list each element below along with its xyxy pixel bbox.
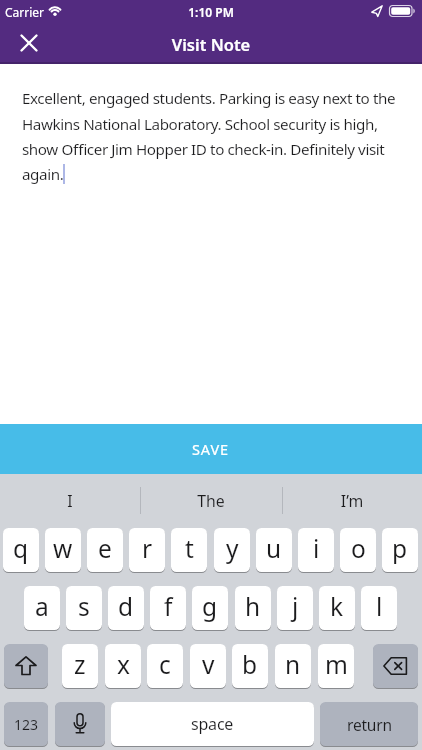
staticText: b [242,648,258,681]
button[interactable]: w [45,528,81,572]
staticText: Carrier [5,4,45,20]
button[interactable]: m [318,644,354,688]
staticText: p [392,532,408,565]
staticText: m [325,648,348,681]
staticText: j [292,590,299,623]
button[interactable]: b [232,644,268,688]
staticText: n [285,648,301,681]
button[interactable]: g [192,586,228,630]
staticText: y [226,532,239,565]
button[interactable]: p [382,528,418,572]
staticText: Visit Note [0,33,422,55]
staticText: g [202,590,218,623]
button[interactable]: I [0,490,140,512]
button[interactable]: f [150,586,186,630]
button[interactable]: a [24,586,60,630]
button[interactable]: x [105,644,141,688]
button[interactable]: The [141,490,281,512]
button[interactable]: return [320,702,418,746]
button[interactable]: y [214,528,250,572]
staticText: 1:10 PM [0,4,422,20]
staticText: v [202,648,215,681]
staticText: h [245,590,261,623]
staticText: i [313,532,320,565]
staticText: SAVE [192,439,230,459]
staticText: r [142,532,153,565]
staticText: w [53,532,73,565]
button[interactable]: d [108,586,144,630]
button[interactable]: u [256,528,292,572]
staticText: s [78,590,90,623]
button[interactable]: q [3,528,39,572]
button[interactable] [14,28,44,58]
button[interactable]: h [235,586,271,630]
staticText: t [185,532,194,565]
staticText: a [35,590,49,623]
staticText: l [376,590,383,623]
button[interactable]: 123 [4,702,48,746]
staticText: x [117,648,130,681]
button[interactable]: r [129,528,165,572]
button[interactable]: n [275,644,311,688]
button[interactable]: c [147,644,183,688]
staticText: space [191,713,234,735]
staticText: Excellent, engaged students. Parking is … [22,88,396,184]
button[interactable] [55,702,105,746]
staticText: d [118,590,134,623]
button[interactable]: o [340,528,376,572]
button[interactable]: space [111,702,314,746]
button[interactable]: e [87,528,123,572]
staticText: f [164,590,173,623]
staticText: return [347,714,392,735]
button[interactable] [4,644,48,688]
staticText: k [330,590,344,623]
button[interactable]: z [62,644,98,688]
button[interactable]: SAVE [0,424,422,474]
button[interactable]: l [361,586,397,630]
button[interactable]: j [277,586,313,630]
staticText: z [74,648,86,681]
staticText: 123 [14,715,39,734]
staticText: o [351,532,366,565]
button[interactable] [373,644,418,688]
staticText: c [159,648,171,681]
staticText: q [13,532,29,565]
button[interactable]: I’m [282,490,422,512]
button[interactable]: k [319,586,355,630]
staticText: e [98,532,112,565]
button[interactable]: s [66,586,102,630]
button[interactable]: i [298,528,334,572]
button[interactable]: v [190,644,226,688]
button[interactable]: t [171,528,207,572]
staticText: u [266,532,282,565]
